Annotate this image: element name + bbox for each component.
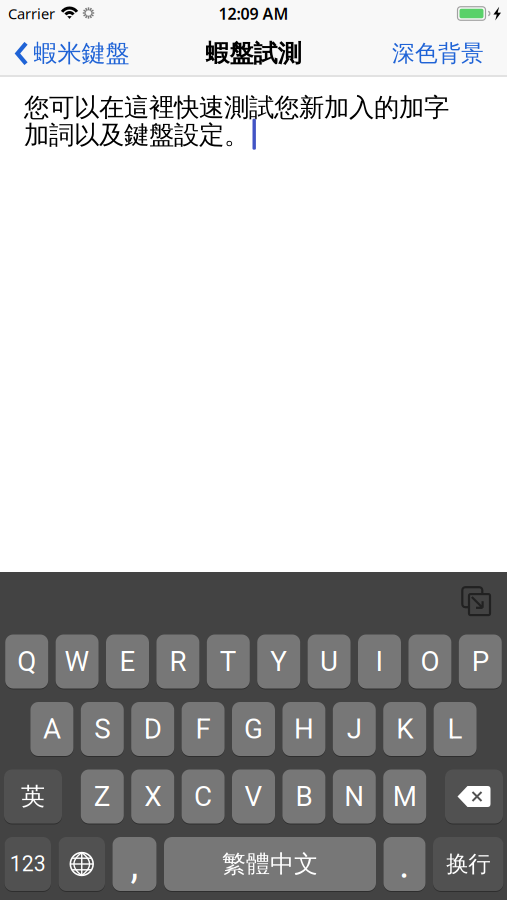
staticText: K (396, 713, 413, 745)
button[interactable]: W (56, 634, 99, 689)
staticText: P (472, 645, 489, 678)
staticText: E (119, 645, 135, 678)
button[interactable]: A (30, 701, 73, 756)
button[interactable]: N (333, 769, 376, 824)
staticText: V (244, 780, 262, 813)
button[interactable]: 繁體中文 (164, 836, 376, 891)
staticText: S (94, 713, 110, 745)
button[interactable]: L (434, 701, 477, 756)
button[interactable]: G (232, 701, 275, 756)
staticText: . (399, 841, 410, 887)
staticText: D (144, 713, 162, 745)
button[interactable]: V (232, 769, 275, 824)
button[interactable]: Y (257, 634, 300, 689)
button[interactable]: Next keyboard (58, 836, 105, 891)
button[interactable]: 深色背景 (392, 40, 507, 67)
staticText: 123 (10, 851, 46, 876)
button[interactable]: R (156, 634, 199, 689)
button[interactable]: M (383, 769, 426, 824)
button[interactable]: . (383, 836, 425, 891)
button[interactable]: 换行 (433, 836, 503, 891)
staticText: 英 (21, 781, 45, 812)
button[interactable]: 123 (4, 836, 51, 891)
staticText: X (144, 780, 161, 813)
staticText: F (196, 713, 211, 745)
staticText: Q (17, 645, 36, 678)
staticText: U (320, 645, 338, 678)
staticText: 蝦米鍵盤 (33, 39, 129, 68)
button[interactable]: X (131, 769, 174, 824)
staticText: 深色背景 (392, 40, 484, 67)
staticText: 您可以在這裡快速測試您新加入的加字 (24, 92, 449, 123)
button[interactable]: P (459, 634, 502, 689)
staticText: G (244, 713, 263, 745)
button[interactable]: 英 (4, 769, 62, 824)
staticText: I (375, 645, 383, 678)
staticText: 换行 (446, 850, 490, 878)
button[interactable]: B (282, 769, 325, 824)
staticText: O (420, 645, 439, 678)
button[interactable]: 蝦米鍵盤 (0, 39, 129, 68)
button[interactable]: S (81, 701, 124, 756)
button[interactable]: I (358, 634, 401, 689)
staticText: B (295, 780, 312, 813)
button[interactable]: Z (81, 769, 124, 824)
staticText: W (65, 645, 90, 678)
staticText: H (294, 713, 314, 745)
staticText: 加詞以及鍵盤設定。 (24, 120, 249, 151)
staticText: Z (94, 780, 111, 813)
button[interactable]: Q (5, 634, 48, 689)
staticText: A (43, 713, 61, 745)
staticText: J (347, 713, 362, 745)
staticText: R (169, 645, 186, 678)
staticText: L (448, 713, 463, 745)
button[interactable]: J (333, 701, 376, 756)
staticText: M (393, 780, 417, 813)
button[interactable]: C (182, 769, 225, 824)
staticText: Carrier (8, 4, 55, 23)
button[interactable]: K (383, 701, 426, 756)
button[interactable]: E (106, 634, 149, 689)
button[interactable]: U (308, 634, 351, 689)
staticText: 蝦盤試測 (205, 39, 301, 68)
button[interactable]: H (282, 701, 325, 756)
button[interactable]: D (131, 701, 174, 756)
button[interactable]: Delete (445, 769, 503, 824)
staticText: N (344, 780, 364, 813)
button[interactable]: F (182, 701, 225, 756)
staticText: C (194, 780, 212, 813)
staticText: , (130, 841, 138, 887)
staticText: Y (270, 645, 287, 678)
button[interactable]: Minimize keyboard (459, 584, 493, 618)
staticText: 繁體中文 (222, 849, 318, 879)
button[interactable]: O (408, 634, 451, 689)
staticText: T (220, 645, 237, 678)
staticText: 12:09 AM (218, 3, 288, 24)
button[interactable]: T (207, 634, 250, 689)
button[interactable]: , (112, 836, 156, 891)
